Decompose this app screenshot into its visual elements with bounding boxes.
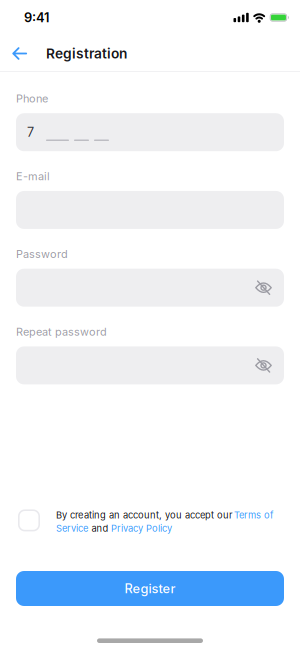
staticText: Password [16,247,68,261]
staticText: Repeat password [16,325,107,338]
staticText: Register [124,581,175,596]
staticText: Phone [16,92,48,105]
button[interactable]: Register [16,571,284,606]
button[interactable]: Terms of [234,509,276,521]
staticText: Privacy Policy [111,523,172,534]
staticText: By creating an account, you accept our [56,509,233,521]
button[interactable]: Service [56,523,89,534]
staticText: 9:41 [24,10,49,25]
button[interactable]: Show password [255,358,284,373]
staticText: Registration [46,45,127,62]
staticText: E-mail [16,170,50,183]
button[interactable]: Privacy Policy [111,523,175,534]
staticText: Terms of [234,509,273,521]
button[interactable]: Password [16,269,284,307]
staticText: 7 [27,125,34,140]
button[interactable]: Show password [255,280,284,295]
button[interactable]: Back [0,34,35,72]
button[interactable]: Phone [16,113,284,151]
button[interactable]: Repeat password [16,346,284,384]
button[interactable]: Accept terms [18,509,40,531]
staticText: and [91,523,108,534]
staticText: Service [56,523,88,534]
